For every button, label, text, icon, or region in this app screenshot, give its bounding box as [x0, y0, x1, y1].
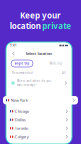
staticText: Select location — [25, 51, 52, 56]
button[interactable]: New York — [3, 96, 78, 104]
staticText: private — [42, 21, 71, 31]
staticText: Chicago — [15, 109, 29, 114]
staticText: Recommended — [12, 71, 33, 75]
staticText: Keep your — [20, 10, 61, 21]
button[interactable]: Toronto — [7, 124, 71, 132]
staticText: want coverage? — [17, 83, 37, 87]
staticText: Multi-trip — [49, 62, 62, 65]
staticText: New York — [11, 98, 28, 103]
button[interactable]: Calgary — [7, 132, 71, 141]
staticText: 9:41 — [10, 44, 17, 47]
staticText: Toronto — [15, 126, 28, 131]
staticText: Calgary — [15, 134, 29, 139]
staticText: Where and when do you — [17, 79, 52, 83]
staticText: location — [10, 21, 41, 31]
staticText: Dallas — [15, 117, 26, 122]
staticText: All — [62, 71, 66, 75]
button[interactable]: Chicago — [7, 107, 71, 115]
button[interactable]: Dallas — [7, 115, 71, 124]
staticText: Single trip — [14, 62, 29, 65]
